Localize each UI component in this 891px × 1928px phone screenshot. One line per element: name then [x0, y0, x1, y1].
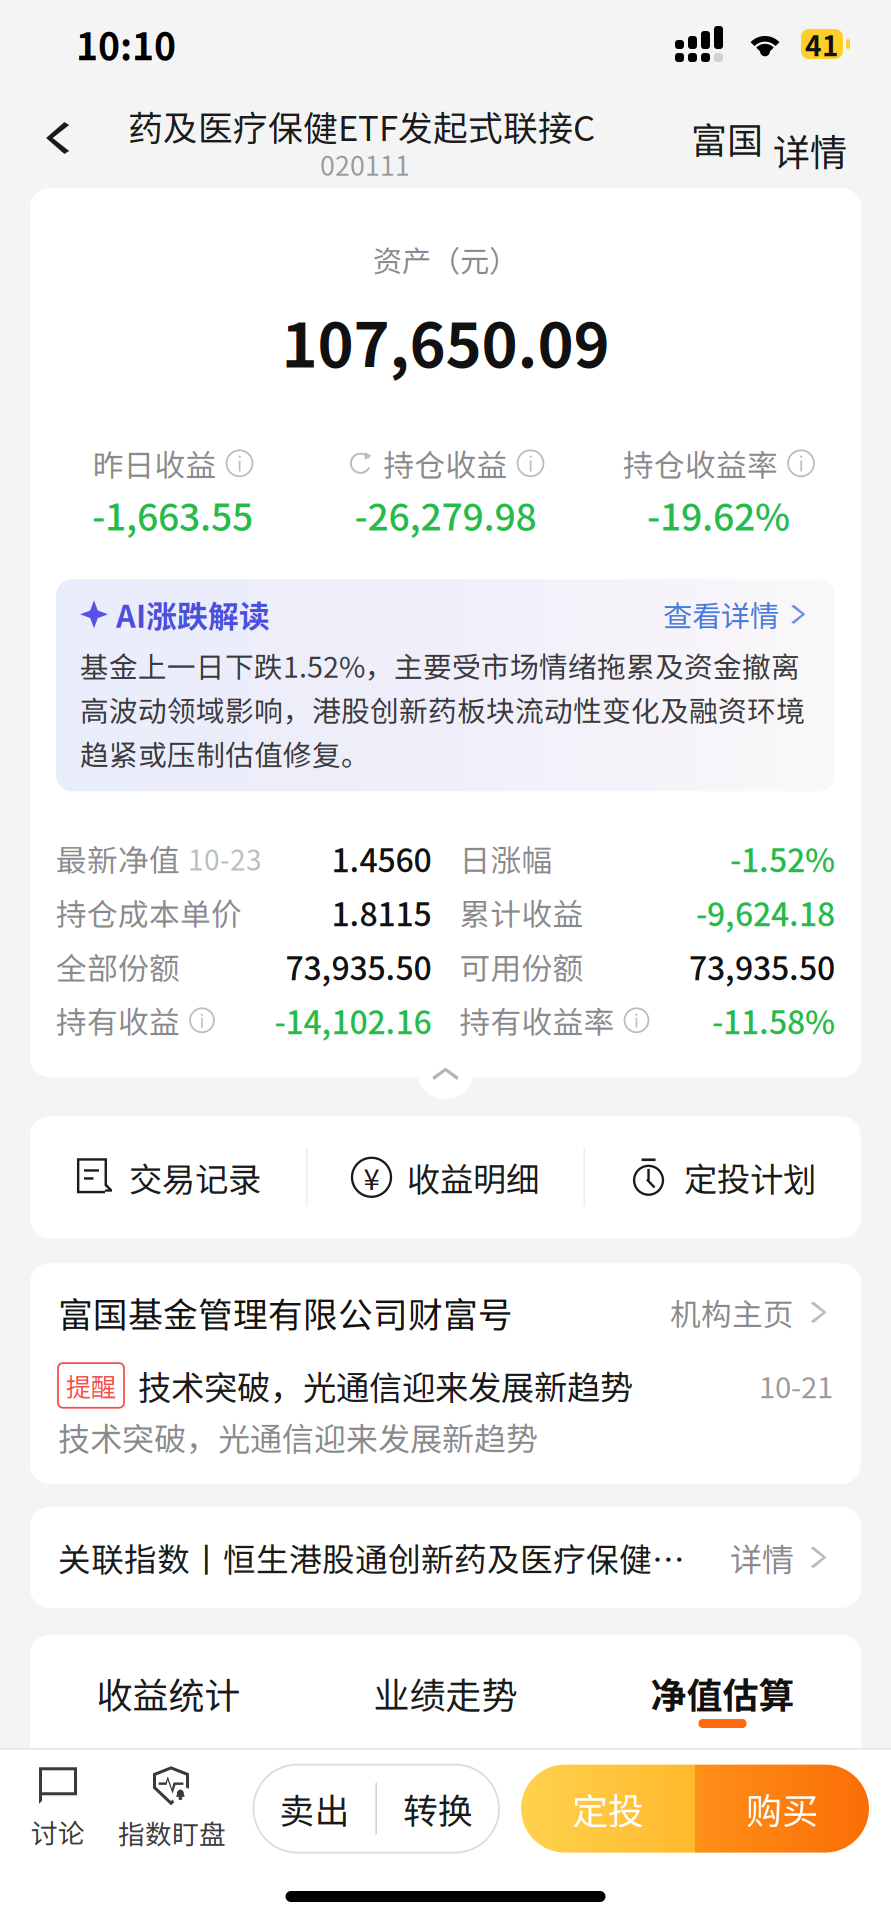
button[interactable]: 收益统计 [30, 1667, 307, 1728]
staticText: 提醒 [66, 1367, 116, 1404]
staticText: 昨日收益 [92, 441, 216, 485]
staticText: 卖出 [279, 1783, 349, 1834]
button[interactable]: 购买 [695, 1765, 869, 1853]
staticText: 73,935.50 [689, 943, 835, 989]
staticText: 高波动领域影响，港股创新药板块流动性变化及融资环境 [80, 688, 805, 730]
staticText: 净值估算 [650, 1667, 794, 1719]
staticText: 定投 [572, 1782, 644, 1835]
staticText: 107,650.09 [281, 296, 609, 385]
button[interactable]: ¥ [307, 1116, 583, 1238]
staticText: 指数盯盘 [118, 1813, 226, 1852]
button[interactable]: 交易记录 [30, 1116, 306, 1238]
button[interactable]: 关联指数丨恒生港股通创新药及医疗保健… [30, 1507, 861, 1608]
staticText: 查看详情 [663, 593, 779, 635]
staticText: 持仓收益率 [623, 441, 778, 485]
staticText: 收益明细 [407, 1153, 539, 1201]
staticText: -26,279.98 [354, 487, 536, 541]
staticText: 定投计划 [684, 1153, 816, 1201]
staticText: 73,935.50 [285, 943, 431, 989]
button[interactable]: Collapse [417, 1021, 473, 1077]
staticText: 10:10 [76, 17, 176, 71]
staticText: 10-21 [759, 1364, 833, 1407]
staticText: 10-23 [188, 838, 262, 878]
staticText: 交易记录 [129, 1153, 261, 1201]
button[interactable]: 提醒 [30, 1361, 861, 1484]
staticText: 富国 [691, 112, 763, 164]
staticText: 持有收益 [56, 998, 180, 1042]
staticText: 富国基金管理有限公司财富号 [58, 1287, 513, 1337]
staticText: -1,663.55 [92, 487, 253, 541]
staticText: 基金上一日下跌1.52%，主要受市场情绪拖累及资金撤离 [80, 644, 800, 686]
button[interactable]: 讨论 [6, 1754, 110, 1864]
staticText: 持仓成本单价 [56, 890, 242, 934]
staticText: 累计收益 [459, 890, 583, 934]
staticText: 最新净值 [56, 836, 180, 880]
staticText: 日涨幅 [459, 836, 552, 880]
button[interactable]: 定投 [521, 1765, 695, 1853]
staticText: i [199, 1008, 204, 1033]
staticText: 药及医疗保健ETF发起式联接C [128, 101, 595, 151]
staticText: 详情 [730, 1534, 794, 1580]
staticText: AI涨跌解读 [116, 592, 270, 636]
staticText: 购买 [746, 1782, 818, 1835]
staticText: 机构主页 [670, 1290, 794, 1334]
staticText: 可用份额 [459, 944, 583, 988]
button[interactable]: 富国基金管理有限公司财富号 [30, 1263, 861, 1361]
staticText: -9,624.18 [696, 889, 835, 935]
button[interactable]: 转换 [377, 1765, 499, 1853]
staticText: -14,102.16 [274, 997, 431, 1043]
staticText: 技术突破，光通信迎来发展新趋势 [138, 1361, 633, 1410]
staticText: i [528, 450, 533, 477]
button[interactable]: 卖出 [253, 1765, 375, 1853]
staticText: i [237, 450, 242, 477]
staticText: 趋紧或压制估值修复。 [80, 732, 370, 774]
staticText: i [634, 1008, 639, 1033]
staticText: 020111 [320, 145, 410, 183]
button[interactable]: Back [0, 88, 112, 188]
button[interactable]: 净值估算 [584, 1667, 861, 1728]
staticText: 持仓收益 [383, 441, 507, 485]
button[interactable]: 指数盯盘 [110, 1754, 234, 1864]
staticText: 1.4560 [331, 835, 431, 881]
staticText: 持有收益率 [459, 998, 614, 1042]
staticText: 收益统计 [96, 1667, 240, 1719]
staticText: 转换 [403, 1783, 473, 1834]
staticText: -11.58% [712, 997, 835, 1043]
button[interactable]: 业绩走势 [307, 1667, 584, 1728]
staticText: -19.62% [647, 487, 790, 541]
button[interactable]: AI涨跌解读 [56, 579, 835, 791]
staticText: ¥ [363, 1156, 379, 1198]
button[interactable]: 详情 [763, 88, 857, 172]
staticText: 资产（元） [373, 238, 518, 280]
staticText: 业绩走势 [373, 1667, 517, 1719]
staticText: i [798, 450, 803, 477]
staticText: 41 [805, 24, 839, 64]
staticText: 全部份额 [56, 944, 180, 988]
staticText: -1.52% [730, 835, 835, 881]
staticText: 1.8115 [331, 889, 431, 935]
staticText: 技术突破，光通信迎来发展新趋势 [58, 1414, 538, 1460]
button[interactable]: 定投计划 [585, 1116, 861, 1238]
staticText: 关联指数丨恒生港股通创新药及医疗保健… [58, 1534, 685, 1581]
staticText: 详情 [773, 123, 847, 177]
staticText: 讨论 [31, 1812, 85, 1851]
